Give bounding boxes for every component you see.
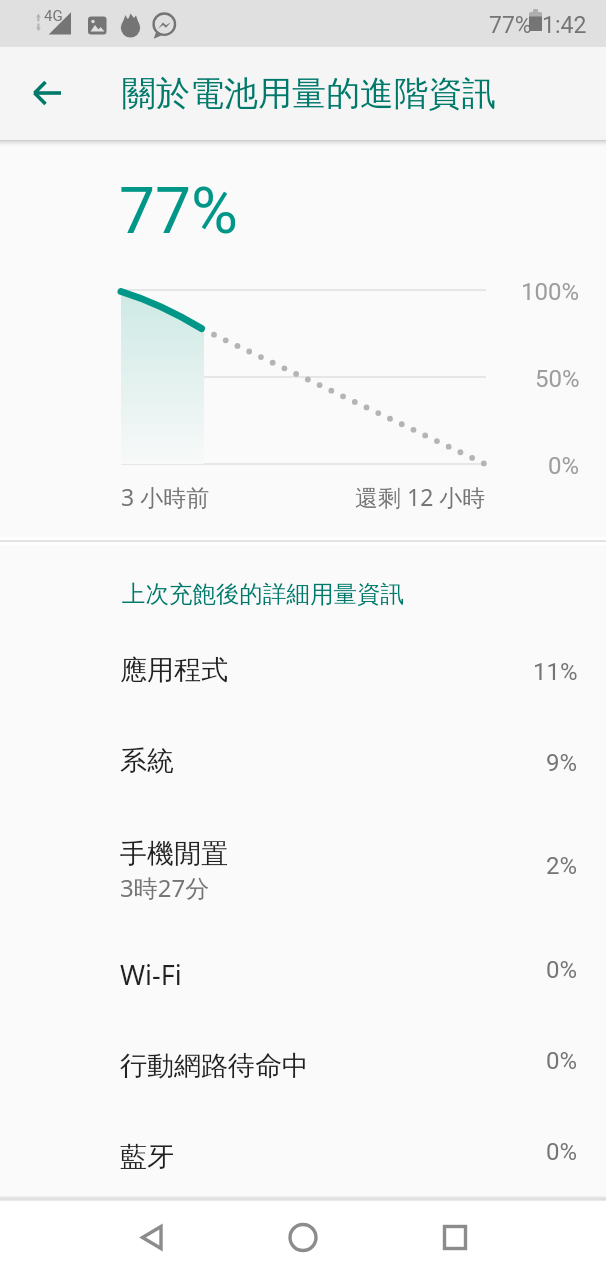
button[interactable]: Recent apps	[415, 1196, 495, 1279]
staticText: 行動網路待命中	[120, 1049, 309, 1083]
button[interactable]: 系統	[0, 722, 606, 813]
button[interactable]: Back	[17, 63, 77, 123]
button[interactable]: 應用程式	[0, 631, 606, 722]
staticText: 手機閒置	[120, 837, 228, 871]
button[interactable]: 藍牙	[0, 1111, 606, 1202]
button[interactable]: 行動網路待命中	[0, 1020, 606, 1111]
staticText: 3時27分	[120, 871, 210, 904]
button[interactable]: Home	[263, 1196, 343, 1279]
staticText: 77%	[489, 12, 532, 39]
staticText: 11%	[533, 658, 578, 686]
staticText: 77%	[119, 174, 238, 249]
button[interactable]: 手機閒置	[0, 813, 606, 929]
staticText: 應用程式	[120, 653, 228, 687]
staticText: 還剩 12 小時	[355, 481, 486, 512]
staticText: 0%	[546, 1047, 578, 1075]
staticText: 上次充飽後的詳細用量資訊	[122, 579, 404, 609]
staticText: 1:42	[542, 12, 587, 39]
staticText: 4G	[44, 7, 63, 25]
staticText: 藍牙	[120, 1140, 174, 1174]
staticText: 關於電池用量的進階資訊	[122, 72, 496, 115]
staticText: Wi-Fi	[120, 956, 182, 993]
button[interactable]: Wi-Fi	[0, 929, 606, 1020]
button[interactable]: Back	[112, 1196, 192, 1279]
staticText: 9%	[546, 749, 578, 777]
staticText: 50%	[535, 365, 580, 393]
staticText: 100%	[521, 278, 580, 306]
staticText: 系統	[120, 744, 174, 778]
staticText: 0%	[548, 452, 580, 480]
staticText: 0%	[546, 956, 578, 984]
staticText: 3 小時前	[121, 481, 210, 512]
staticText: 0%	[546, 1138, 578, 1166]
staticText: 2%	[546, 852, 578, 880]
